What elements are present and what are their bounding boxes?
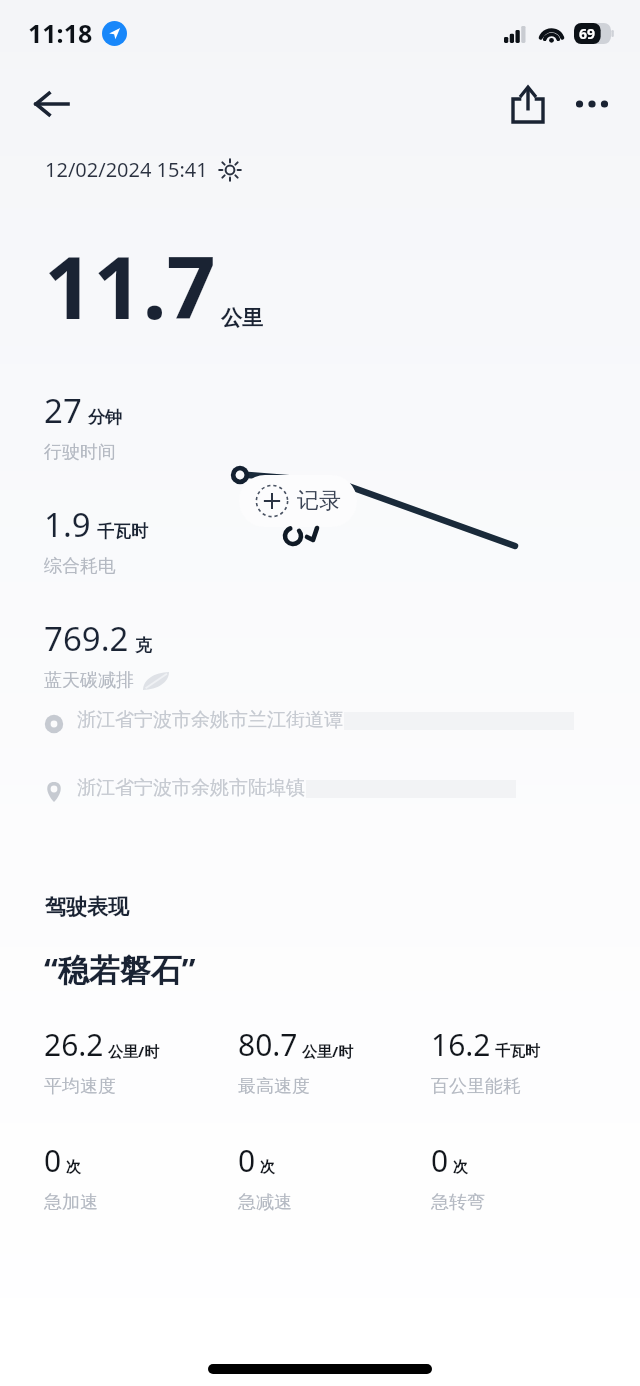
staticText: 浙江省宁波市余姚市陆埠镇: [77, 776, 305, 800]
staticText: 蓝天碳减排: [44, 669, 134, 692]
staticText: 综合耗电: [44, 555, 116, 578]
staticText: 克: [135, 635, 152, 656]
staticText: 27: [44, 388, 82, 433]
staticText: 急转弯: [431, 1191, 485, 1214]
staticText: 69: [579, 24, 596, 43]
staticText: 次: [66, 1158, 81, 1177]
staticText: 急减速: [238, 1191, 292, 1214]
staticText: 公里: [221, 305, 263, 331]
staticText: 浙江省宁波市余姚市兰江街道谭: [77, 708, 343, 732]
button[interactable]: More options: [566, 78, 618, 130]
staticText: 驾驶表现: [45, 894, 129, 920]
staticText: 26.2: [44, 1024, 104, 1065]
staticText: 百公里能耗: [431, 1075, 521, 1098]
button[interactable]: 记录: [239, 475, 357, 527]
button[interactable]: 浙江省宁波市余姚市陆埠镇: [44, 776, 620, 826]
staticText: 记录: [297, 487, 341, 515]
staticText: 次: [260, 1158, 275, 1177]
button[interactable]: Back: [26, 78, 78, 130]
staticText: 急加速: [44, 1191, 98, 1214]
staticText: 分钟: [88, 407, 122, 428]
staticText: 11:18: [28, 16, 93, 50]
staticText: 0: [238, 1140, 256, 1181]
staticText: 平均速度: [44, 1075, 116, 1098]
button[interactable]: 浙江省宁波市余姚市兰江街道谭: [44, 708, 620, 758]
staticText: 0: [431, 1140, 449, 1181]
staticText: 769.2: [44, 616, 129, 661]
staticText: 80.7: [238, 1024, 298, 1065]
staticText: 公里/时: [302, 1041, 354, 1061]
staticText: 行驶时间: [44, 441, 116, 464]
staticText: 0: [44, 1140, 62, 1181]
staticText: 次: [453, 1158, 468, 1177]
staticText: 公里/时: [108, 1041, 160, 1061]
staticText: 1.9: [44, 502, 91, 547]
staticText: 12/02/2024 15:41: [45, 156, 208, 183]
staticText: 千瓦时: [495, 1042, 540, 1061]
staticText: 最高速度: [238, 1075, 310, 1098]
staticText: 11.7: [44, 227, 216, 344]
button[interactable]: Share: [502, 78, 554, 130]
staticText: “稳若磐石”: [44, 948, 196, 990]
staticText: 千瓦时: [97, 521, 148, 542]
staticText: 16.2: [431, 1024, 491, 1065]
